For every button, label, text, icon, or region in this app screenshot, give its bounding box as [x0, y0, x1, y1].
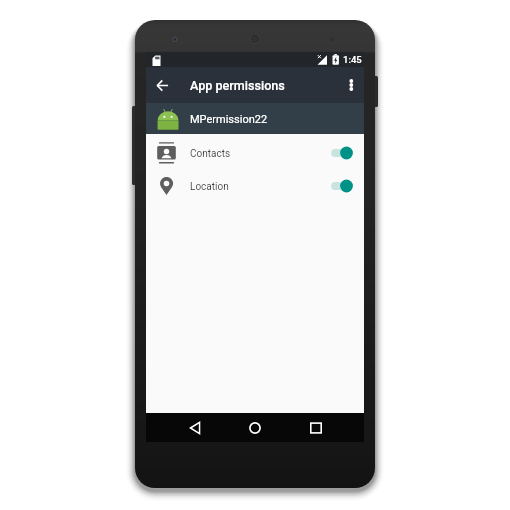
button[interactable]: Back	[182, 415, 208, 441]
staticText: Location	[190, 181, 229, 193]
button[interactable]: MPermission22	[146, 103, 364, 134]
button[interactable]: Location permission toggle	[331, 177, 353, 195]
button[interactable]: Contacts	[146, 136, 364, 169]
button[interactable]: Contacts permission toggle	[331, 144, 353, 162]
staticText: MPermission22	[190, 113, 268, 126]
button[interactable]: Home	[242, 415, 268, 441]
button[interactable]: More options	[342, 67, 364, 103]
button[interactable]: Location	[146, 169, 364, 202]
button[interactable]: Recent apps	[303, 415, 329, 441]
staticText: 1:45	[343, 54, 362, 65]
button[interactable]: Navigate up	[149, 67, 175, 103]
staticText: Contacts	[190, 148, 231, 160]
staticText: App permissions	[190, 78, 285, 93]
